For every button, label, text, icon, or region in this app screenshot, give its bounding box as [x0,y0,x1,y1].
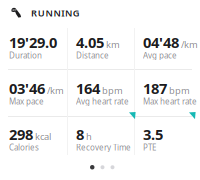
button[interactable]: 4.05 [76,41,142,81]
staticText: Duration [9,50,42,61]
staticText: bpm [169,84,190,96]
staticText: RUNNING [31,7,80,19]
staticText: Avg heart rate [76,96,129,107]
staticText: 187 [143,78,167,98]
staticText: 4.05 [76,32,104,52]
staticText: 19'29.0 [9,32,57,52]
button[interactable]: 187 [143,87,200,127]
button[interactable]: 298 [9,133,75,173]
staticText: PTE [143,142,156,153]
staticText: Calories [9,142,39,153]
staticText: Max heart rate [143,96,197,107]
button[interactable]: Page 1 [88,163,96,171]
staticText: kcal [35,130,51,142]
button[interactable]: Running workout [11,6,80,20]
staticText: bpm [102,84,123,96]
staticText: 8 [76,124,84,144]
staticText: 298 [9,124,33,144]
staticText: 03'46 [9,78,45,98]
button[interactable]: 03'46 [9,87,75,127]
staticText: Avg pace [143,50,177,61]
button[interactable]: 04'48 [143,41,200,81]
staticText: /km [181,38,198,50]
staticText: Distance [76,50,109,61]
button[interactable]: 164 [76,87,142,127]
button[interactable]: 3.5 [143,133,200,173]
staticText: 164 [76,78,100,98]
staticText: /km [47,84,64,96]
staticText: h [86,130,92,142]
button[interactable]: 19'29.0 [9,41,75,81]
staticText: Max pace [9,96,44,107]
staticText: Recovery Time [76,142,131,153]
staticText: km [106,38,120,50]
button[interactable]: Page 2 [98,163,106,171]
staticText: 04'48 [143,32,179,52]
button[interactable]: 8 [76,133,142,173]
staticText: 3.5 [143,124,163,144]
button[interactable]: Page 3 [108,163,116,171]
